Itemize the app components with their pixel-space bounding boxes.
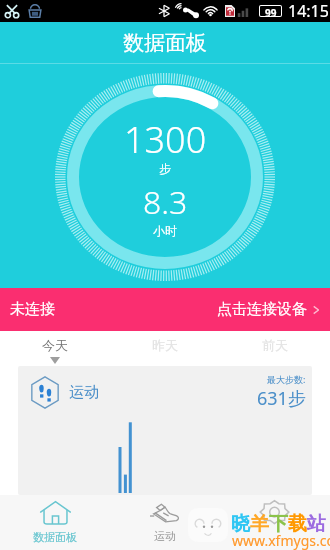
- staticText: 1300: [124, 115, 207, 164]
- staticText: 运动: [154, 529, 176, 543]
- button[interactable]: 今天: [0, 331, 110, 366]
- staticText: 数据面板: [33, 530, 77, 544]
- staticText: 羊: [250, 512, 269, 536]
- button[interactable]: 前天: [220, 331, 330, 366]
- staticText: 631步: [257, 386, 306, 411]
- staticText: 未连接: [10, 300, 55, 319]
- staticText: 昨天: [152, 337, 178, 353]
- button[interactable]: 昨天: [110, 331, 220, 366]
- staticText: 站: [307, 512, 326, 536]
- staticText: 运动: [69, 383, 99, 402]
- staticText: 14:15: [288, 0, 329, 22]
- staticText: 下: [269, 512, 288, 536]
- staticText: 最大步数:: [267, 373, 306, 385]
- staticText: 点击连接设备: [217, 300, 307, 319]
- staticText: 晓: [231, 512, 250, 536]
- staticText: 载: [288, 512, 307, 536]
- staticText: 99: [265, 6, 277, 16]
- staticText: 步: [159, 161, 171, 176]
- staticText: 小时: [153, 223, 177, 238]
- staticText: 今天: [42, 337, 68, 353]
- staticText: 前天: [262, 337, 288, 353]
- staticText: 8.3: [143, 180, 188, 224]
- staticText: www.xfmygs.com: [232, 531, 330, 550]
- button[interactable]: 运动: [110, 495, 220, 550]
- button[interactable]: 运动: [18, 366, 312, 495]
- staticText: 数据面板: [123, 30, 207, 56]
- button[interactable]: 数据面板: [0, 495, 110, 550]
- button[interactable]: 未连接: [0, 288, 330, 331]
